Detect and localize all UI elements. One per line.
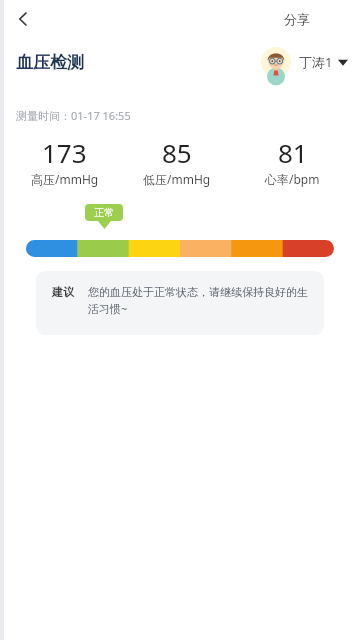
staticText: 高压/mmHg [31, 171, 99, 187]
staticText: 血压检测 [16, 52, 84, 73]
staticText: 丁涛1 [299, 53, 333, 71]
staticText: 测量时间：01-17 16:55 [16, 108, 131, 123]
staticText: 您的血压处于正常状态，请继续保持良好的生活习惯~ [88, 285, 310, 317]
staticText: 低压/mmHg [143, 171, 211, 187]
staticText: 心率/bpm [265, 171, 320, 187]
staticText: 173 [42, 135, 87, 170]
button[interactable]: 丁涛1 [259, 45, 350, 79]
staticText: 分享 [284, 11, 310, 27]
staticText: 85 [162, 135, 192, 170]
button[interactable]: Back [6, 2, 40, 36]
staticText: 81 [278, 135, 308, 170]
staticText: 正常 [94, 206, 114, 219]
staticText: 建议 [52, 285, 74, 299]
button[interactable]: 分享 [278, 7, 316, 31]
button[interactable]: 建议 [36, 271, 324, 335]
